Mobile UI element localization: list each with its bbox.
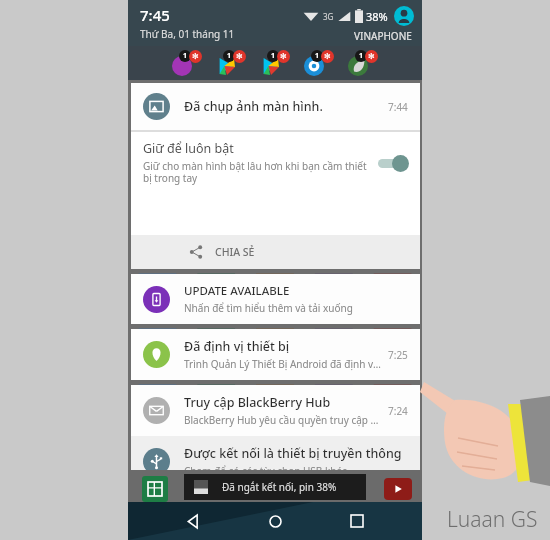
staticText: 7:44 [388, 100, 408, 114]
button[interactable]: Truy cập BlackBerry Hub [131, 385, 420, 436]
staticText: ✻ [280, 52, 287, 61]
staticText: 7:25 [388, 348, 408, 362]
button[interactable]: Được kết nối là thiết bị truyền thông [131, 436, 420, 487]
button[interactable]: Home [258, 504, 292, 538]
staticText: Đã ngắt kết nối, pin 38% [222, 480, 337, 494]
staticText: CHIA SẺ [215, 245, 255, 259]
staticText: Giữ để luôn bật [143, 140, 234, 157]
staticText: ✻ [192, 52, 199, 61]
button[interactable]: Keep screen on toggle [376, 153, 410, 173]
staticText: ✻ [324, 52, 331, 61]
button[interactable]: Giữ để luôn bật [131, 132, 420, 193]
staticText: VINAPHONE [354, 29, 412, 43]
staticText: Luaan GS [447, 505, 538, 534]
button[interactable]: Sheets [142, 476, 168, 502]
staticText: BlackBerry Hub yêu cầu quyền truy cập và… [184, 413, 382, 427]
button[interactable]: Notification app icon [216, 50, 246, 76]
button[interactable]: Notification app icon [172, 50, 202, 76]
staticText: Chạm để có các tùy chọn USB khác. [184, 464, 350, 478]
staticText: 7:45 [140, 5, 170, 25]
button[interactable]: YouTube [384, 478, 412, 500]
staticText: Thứ Ba, 01 tháng 11 [140, 27, 235, 41]
button[interactable]: Notification app icon [348, 50, 378, 76]
button[interactable]: Đã định vị thiết bị [131, 329, 420, 380]
button[interactable]: Back [176, 504, 210, 538]
staticText: ✻ [236, 52, 243, 61]
staticText: 1 [359, 51, 364, 61]
staticText: Giữ cho màn hình bật lâu hơn khi bạn cầm… [143, 159, 368, 185]
staticText: Trình Quản Lý Thiết Bị Android đã định v… [184, 357, 382, 371]
staticText: 3G [323, 11, 334, 22]
button[interactable]: Notification app icon [260, 50, 290, 76]
staticText: UPDATE AVAILABLE [184, 283, 290, 299]
button[interactable]: UPDATE AVAILABLE [131, 274, 420, 324]
staticText: Truy cập BlackBerry Hub [184, 394, 331, 411]
staticText: Đã chụp ảnh màn hình. [184, 98, 388, 115]
staticText: 1 [271, 51, 276, 61]
staticText: 7:24 [388, 404, 408, 418]
button[interactable]: Account [394, 6, 414, 26]
staticText: Được kết nối là thiết bị truyền thông [184, 445, 402, 462]
staticText: 38% [366, 9, 388, 24]
button[interactable]: CHIA SẺ [131, 235, 420, 269]
button[interactable]: Đã chụp ảnh màn hình. [131, 83, 420, 130]
staticText: ✻ [368, 52, 375, 61]
button[interactable]: Notification app icon [304, 50, 334, 76]
staticText: 1 [227, 51, 232, 61]
staticText: 1 [315, 51, 320, 61]
staticText: Đã định vị thiết bị [184, 338, 290, 355]
button[interactable]: Recents [340, 504, 374, 538]
staticText: Nhấn để tìm hiểu thêm và tải xuống [184, 301, 353, 315]
staticText: 1 [183, 51, 188, 61]
